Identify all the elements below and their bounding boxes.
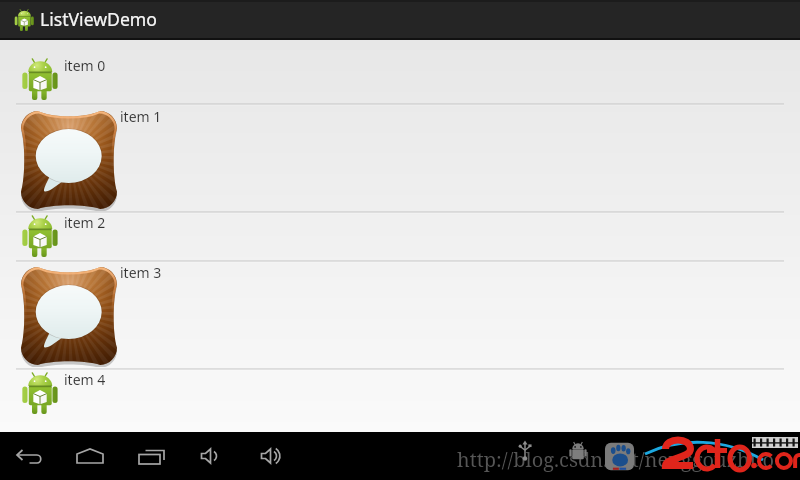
button[interactable] xyxy=(0,105,800,212)
button[interactable]: Volume up xyxy=(244,432,296,480)
button[interactable]: Home xyxy=(64,432,116,480)
staticText: item 0 xyxy=(64,56,106,75)
button[interactable] xyxy=(0,262,800,369)
staticText: item 2 xyxy=(64,213,106,232)
button[interactable] xyxy=(0,40,800,104)
staticText: item 3 xyxy=(120,263,162,282)
button[interactable] xyxy=(0,213,800,261)
staticText: item 4 xyxy=(64,370,106,389)
button[interactable]: Recent apps xyxy=(125,432,177,480)
button[interactable]: Back xyxy=(4,432,56,480)
staticText: http://blog.csdn.net/nenggouzhuo xyxy=(457,446,774,473)
button[interactable]: Volume down xyxy=(184,432,236,480)
button[interactable] xyxy=(0,370,800,432)
staticText: ListViewDemo xyxy=(40,7,157,31)
staticText: item 1 xyxy=(120,107,162,126)
